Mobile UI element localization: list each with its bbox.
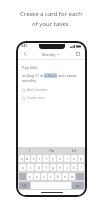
staticText: h [59, 166, 61, 170]
button[interactable]: c [41, 173, 47, 180]
button[interactable]: b [55, 173, 61, 180]
staticText: q [21, 157, 23, 161]
staticText: c [43, 175, 45, 179]
button[interactable]: I [18, 147, 41, 154]
button[interactable]: Create note [22, 96, 81, 100]
button[interactable]: g [50, 164, 56, 171]
button[interactable]: More options [74, 50, 82, 58]
staticText: r [39, 157, 41, 161]
button[interactable]: h [57, 164, 63, 171]
button[interactable]: Monday [42, 52, 60, 57]
staticText: a [22, 166, 24, 170]
staticText: g [52, 166, 54, 170]
button[interactable]: e [31, 155, 36, 162]
staticText: x [36, 175, 38, 179]
staticText: I [29, 149, 31, 153]
staticText: The [49, 149, 55, 153]
staticText: n [64, 175, 66, 179]
staticText: Pay bills [22, 65, 38, 70]
button[interactable]: s [27, 164, 34, 171]
staticText: z [29, 175, 31, 179]
staticText: 123 [22, 184, 27, 188]
staticText: on Aug 21 at 4:30pm and repeat monthly [22, 73, 81, 83]
staticText: Create note [27, 96, 45, 100]
staticText: f [46, 166, 47, 170]
staticText: y [52, 157, 54, 161]
button[interactable]: 123 [19, 182, 30, 189]
staticText: 9:41 [21, 44, 27, 48]
staticText: o [73, 157, 75, 161]
staticText: d [38, 166, 40, 170]
button[interactable]: n [62, 173, 68, 180]
button[interactable]: i [64, 155, 70, 162]
button[interactable]: t [43, 155, 49, 162]
button[interactable]: go [72, 182, 84, 189]
button[interactable]: u [57, 155, 63, 162]
button[interactable]: y [50, 155, 56, 162]
button[interactable]: o [71, 155, 77, 162]
staticText: of your tasks. [32, 20, 70, 28]
button[interactable]: x [34, 173, 40, 180]
staticText: e [33, 157, 35, 161]
staticText: i [67, 157, 68, 161]
staticText: Add reminder [27, 88, 48, 92]
button[interactable]: a [19, 164, 26, 171]
button[interactable]: Key [76, 173, 84, 180]
button[interactable]: v [48, 173, 54, 180]
button[interactable]: I'm [63, 147, 85, 154]
button[interactable]: w [25, 155, 30, 162]
staticText: w [26, 157, 29, 161]
button[interactable]: m [69, 173, 75, 180]
button[interactable]: r [37, 155, 42, 162]
staticText: l [81, 166, 82, 170]
staticText: s [30, 166, 32, 170]
button[interactable]: j [64, 164, 70, 171]
staticText: I'm [72, 149, 77, 153]
staticText: t [46, 157, 47, 161]
staticText: m [71, 175, 74, 179]
staticText: j [67, 166, 68, 170]
staticText: k [73, 166, 75, 170]
button[interactable]: z [27, 173, 33, 180]
staticText: p [80, 157, 82, 161]
button[interactable]: p [78, 155, 84, 162]
button[interactable]: Add reminder [22, 88, 81, 92]
staticText: go [76, 184, 80, 188]
button[interactable]: l [78, 164, 84, 171]
staticText: b [57, 175, 59, 179]
button[interactable]: Back [21, 50, 29, 58]
staticText: v [50, 175, 52, 179]
button[interactable]: Key [19, 173, 26, 180]
staticText: Monday [42, 52, 56, 57]
button[interactable]: f [43, 164, 49, 171]
button[interactable]: d [35, 164, 42, 171]
button[interactable]: The [41, 147, 63, 154]
button[interactable]: k [71, 164, 77, 171]
staticText: u [59, 157, 61, 161]
button[interactable]: q [19, 155, 24, 162]
staticText: Create a card for each [20, 10, 82, 18]
